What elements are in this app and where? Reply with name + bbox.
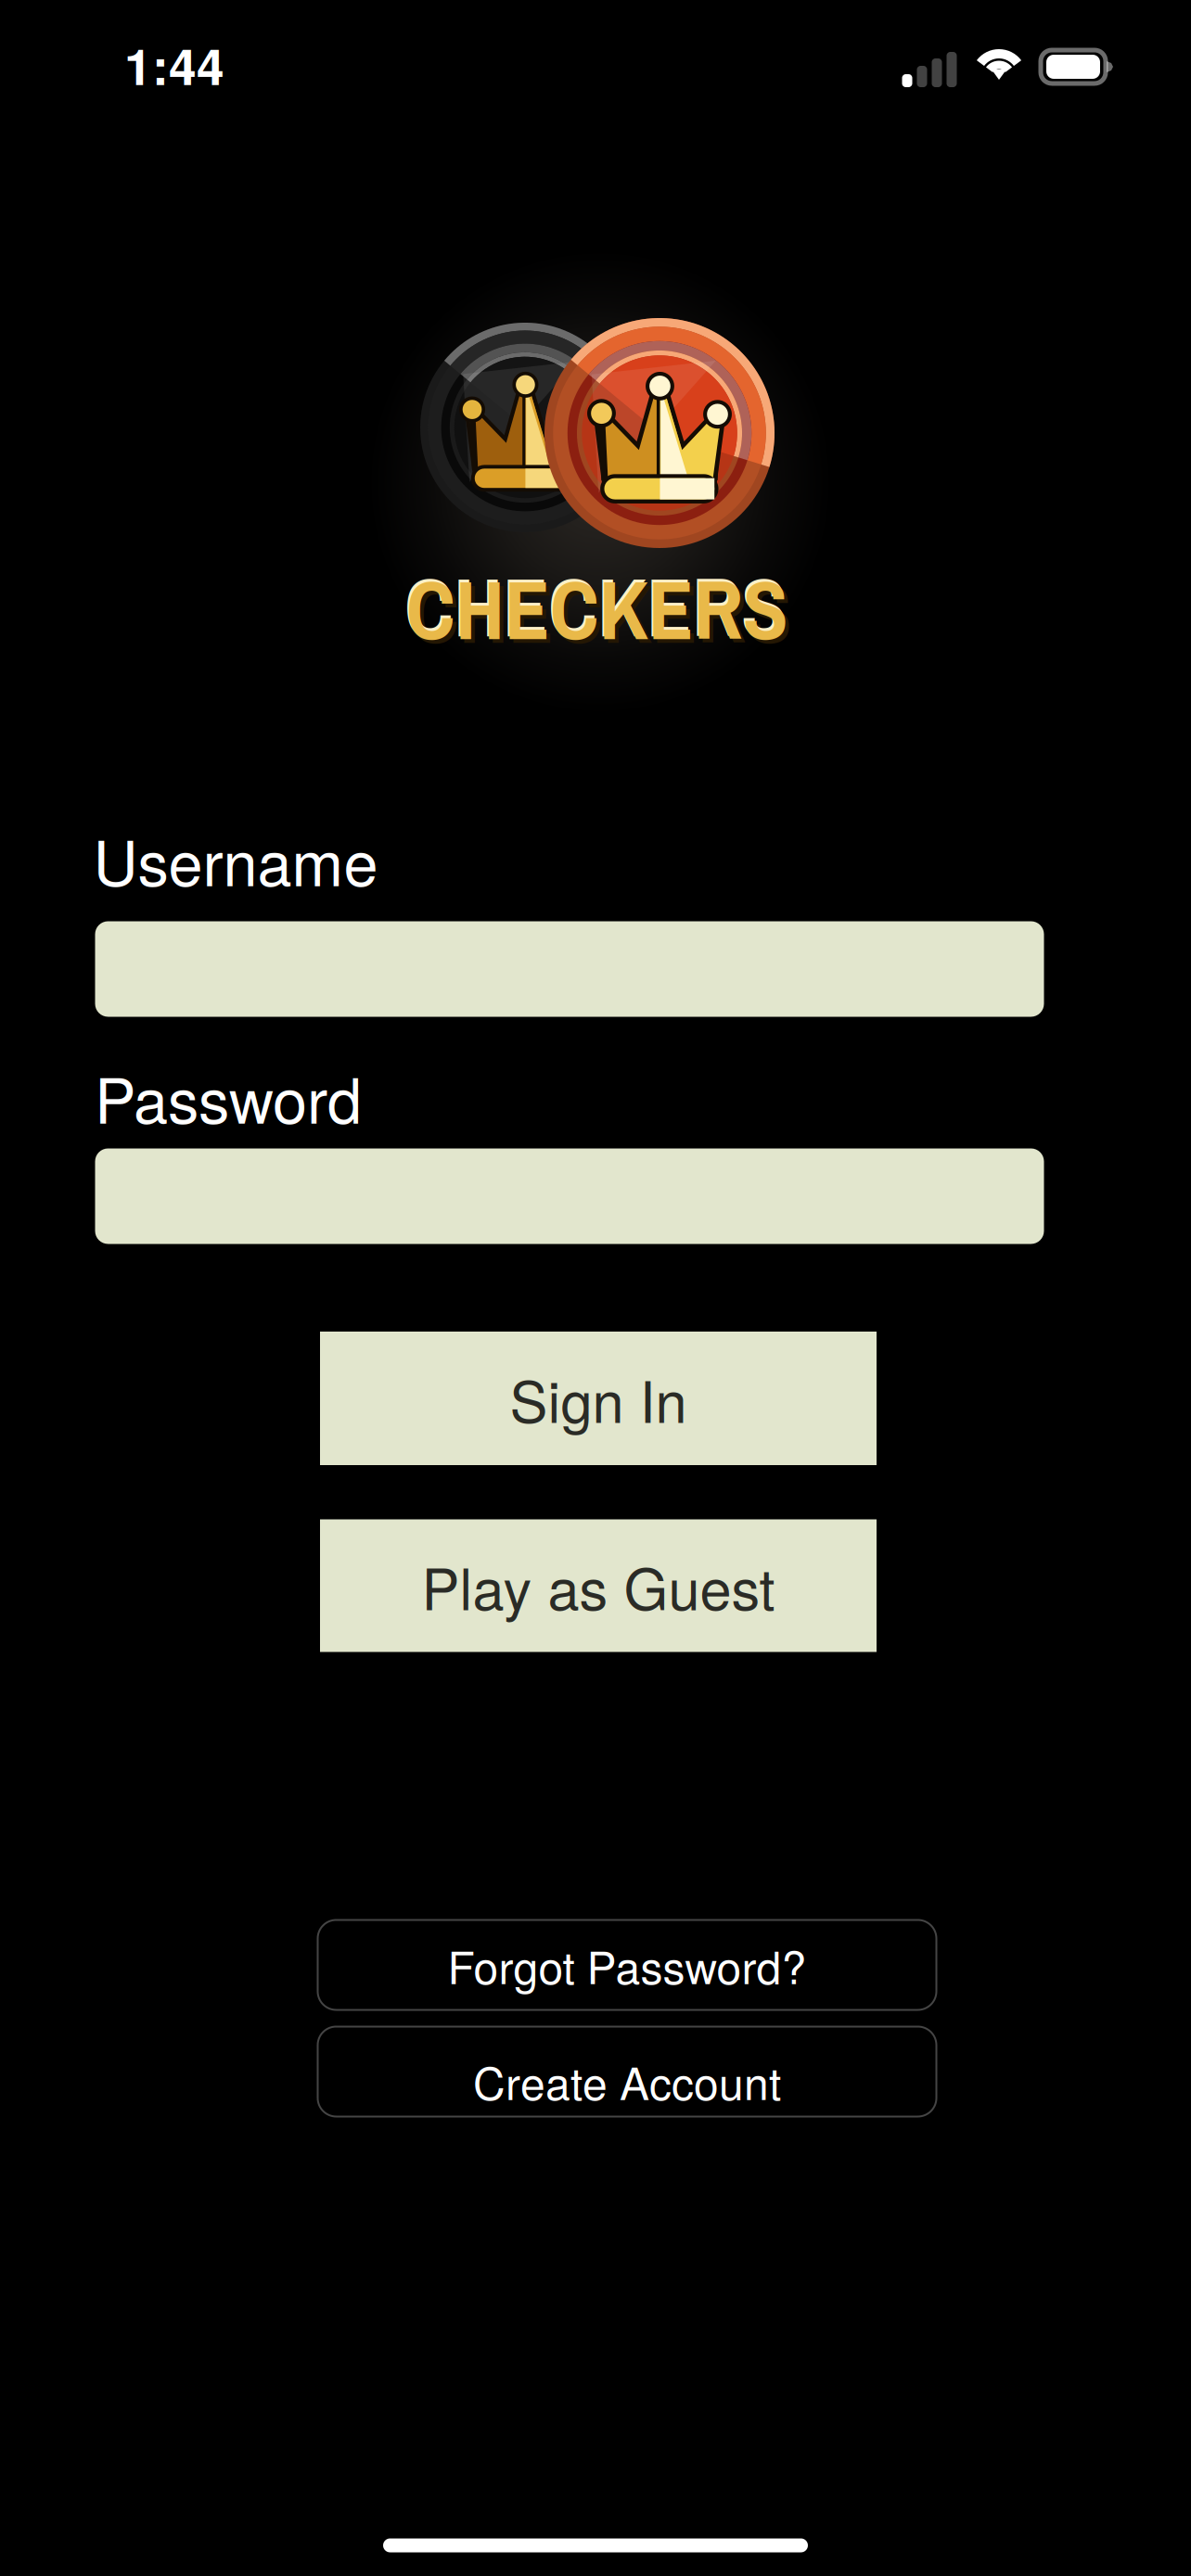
staticText: CHECKERS xyxy=(404,551,787,662)
button[interactable]: Forgot Password? xyxy=(318,1920,936,2010)
staticText: Forgot Password? xyxy=(448,1933,807,1997)
staticText: Password xyxy=(95,1053,362,1141)
staticText: Create Account xyxy=(473,2049,781,2113)
staticText: Sign In xyxy=(510,1358,687,1439)
staticText: 1:44 xyxy=(124,29,224,100)
button[interactable]: Play as Guest xyxy=(320,1519,877,1652)
staticText: CHECKERS xyxy=(406,553,788,665)
staticText: Username xyxy=(93,815,378,904)
button[interactable]: Create Account xyxy=(318,2027,936,2117)
button[interactable]: Password xyxy=(95,1148,1044,1244)
staticText: CHECKERS xyxy=(410,557,792,669)
button[interactable]: Sign In xyxy=(320,1332,877,1465)
staticText: Play as Guest xyxy=(422,1545,775,1626)
button[interactable]: Username xyxy=(95,921,1044,1017)
